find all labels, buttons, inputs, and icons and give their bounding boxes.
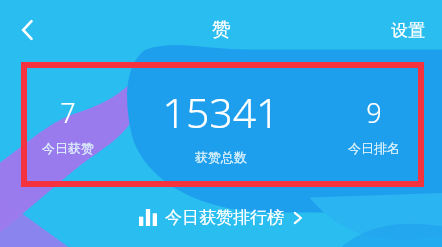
staticText: 7 bbox=[60, 94, 76, 131]
staticText: 9 bbox=[366, 94, 382, 131]
staticText: 今日获赞 bbox=[42, 140, 94, 156]
staticText: 获赞总数 bbox=[195, 149, 247, 165]
staticText: 赞 bbox=[212, 18, 231, 42]
button[interactable]: Back bbox=[6, 8, 50, 52]
button[interactable]: 15341 bbox=[136, 62, 306, 187]
staticText: 今日获赞排行榜 bbox=[165, 207, 284, 228]
staticText: 15341 bbox=[162, 84, 280, 140]
button[interactable]: 今日获赞排行榜 bbox=[125, 202, 317, 233]
button[interactable]: 9 bbox=[306, 62, 442, 187]
button[interactable]: 7 bbox=[0, 62, 136, 187]
staticText: 今日排名 bbox=[348, 140, 400, 156]
staticText: 设置 bbox=[391, 20, 425, 41]
button[interactable]: 设置 bbox=[374, 10, 442, 51]
